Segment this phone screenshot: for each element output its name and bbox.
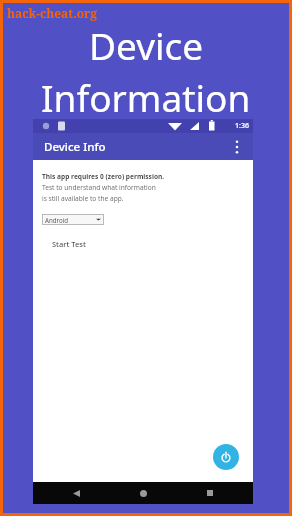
staticText: 1:36 — [235, 121, 249, 131]
staticText: Device — [89, 20, 204, 70]
button[interactable]: Home — [134, 484, 152, 502]
button[interactable]: Start test — [213, 444, 239, 470]
button[interactable]: Back — [67, 484, 85, 502]
staticText: Start Test — [52, 239, 86, 249]
staticText: Device Info — [44, 139, 106, 155]
button[interactable]: Recent apps — [201, 484, 219, 502]
button[interactable]: More options — [227, 137, 247, 157]
staticText: Android — [45, 216, 69, 224]
staticText: is still available to the app. — [42, 194, 124, 203]
button[interactable]: Android — [42, 214, 104, 225]
button[interactable]: Start Test — [52, 239, 86, 249]
staticText: Test to understand what information — [42, 183, 156, 192]
staticText: This app requires 0 (zero) permission. — [42, 172, 165, 181]
staticText: Information — [41, 72, 251, 122]
staticText: hack-cheat.org — [7, 5, 98, 21]
